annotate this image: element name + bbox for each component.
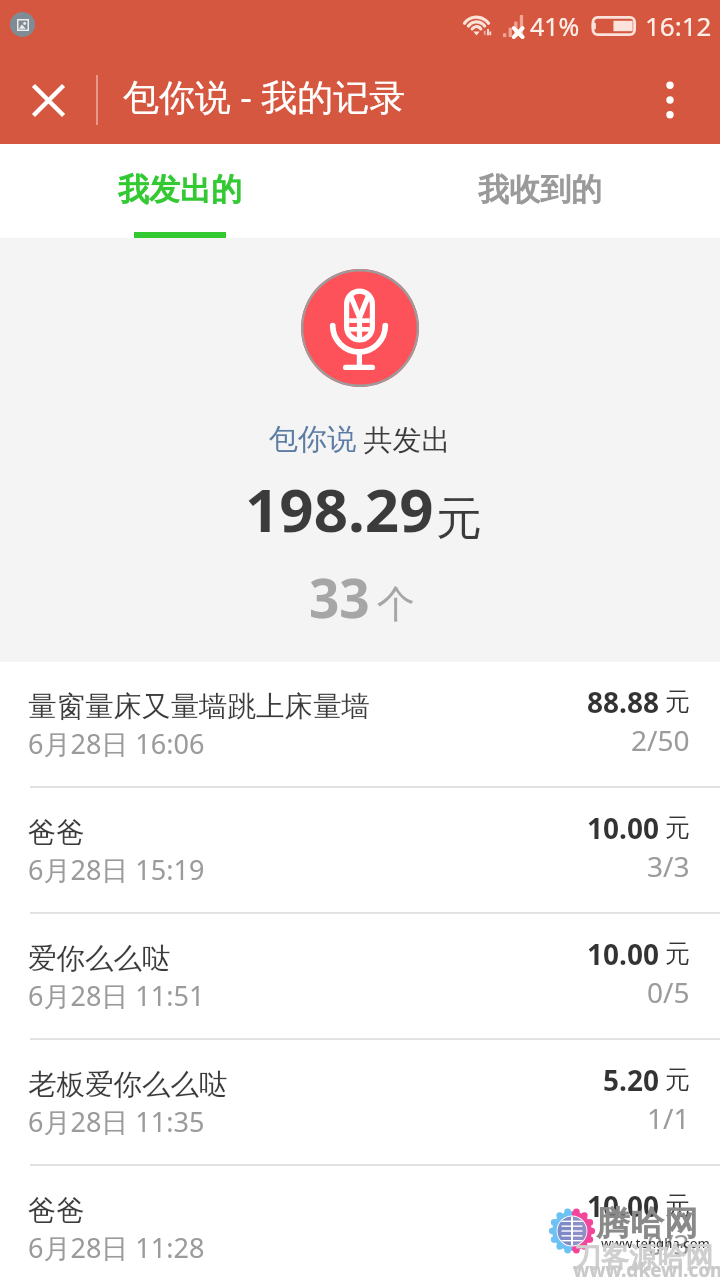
staticText: 元: [665, 1064, 690, 1095]
staticText: 41%: [530, 9, 580, 43]
staticText: 我发出的: [118, 170, 242, 209]
staticText: 10.00: [587, 1187, 659, 1225]
staticText: 2/50: [631, 721, 690, 759]
button[interactable]: 爱你么么哒: [0, 914, 720, 1038]
staticText: 6月28日 11:28: [28, 1229, 205, 1266]
staticText: 共发出: [356, 419, 451, 459]
button[interactable]: 我发出的: [0, 144, 360, 238]
button[interactable]: 量窗量床又量墙跳上床量墙: [0, 662, 720, 786]
button[interactable]: Close: [10, 62, 86, 138]
staticText: 爸爸: [28, 815, 85, 851]
staticText: 88.88: [587, 683, 659, 721]
staticText: 元: [436, 490, 482, 548]
staticText: 6月28日 11:35: [28, 1103, 205, 1140]
staticText: 爱你么么哒: [28, 941, 171, 977]
staticText: 6月28日 15:19: [28, 851, 205, 888]
staticText: 腾哈网: [596, 1202, 698, 1245]
staticText: 16:12: [645, 8, 712, 43]
button[interactable]: 爸爸: [0, 788, 720, 912]
staticText: 6月28日 16:06: [28, 725, 205, 762]
staticText: 量窗量床又量墙跳上床量墙: [28, 689, 370, 725]
staticText: 元: [665, 938, 690, 969]
staticText: 6月28日 11:51: [28, 977, 205, 1014]
staticText: 元: [665, 686, 690, 717]
button[interactable]: Record voice message: [301, 269, 419, 387]
staticText: 爸爸: [28, 1193, 85, 1229]
staticText: 个: [377, 580, 415, 628]
staticText: www.tengha.com: [601, 1234, 710, 1252]
staticText: 刀客源哈网: [573, 1240, 713, 1275]
staticText: 1/1: [647, 1099, 690, 1137]
button[interactable]: 爸爸: [0, 1166, 720, 1280]
staticText: 33: [309, 561, 370, 633]
button[interactable]: More options: [632, 62, 708, 138]
staticText: 10.00: [587, 809, 659, 847]
staticText: 老板爱你么么哒: [28, 1067, 228, 1103]
staticText: 元: [665, 812, 690, 843]
staticText: 198.29: [245, 468, 434, 550]
staticText: 10.00: [587, 935, 659, 973]
staticText: 我收到的: [478, 170, 602, 209]
staticText: 包你说 - 我的记录: [123, 72, 406, 121]
staticText: 0/5: [647, 973, 690, 1011]
staticText: 0/3: [647, 1225, 690, 1263]
button[interactable]: 老板爱你么么哒: [0, 1040, 720, 1164]
staticText: www.dkewl.com: [573, 1257, 720, 1280]
staticText: 元: [665, 1190, 690, 1221]
button[interactable]: 我收到的: [360, 144, 720, 238]
staticText: 3/3: [647, 847, 690, 885]
staticText: 包你说: [269, 421, 356, 458]
staticText: 5.20: [603, 1061, 659, 1099]
